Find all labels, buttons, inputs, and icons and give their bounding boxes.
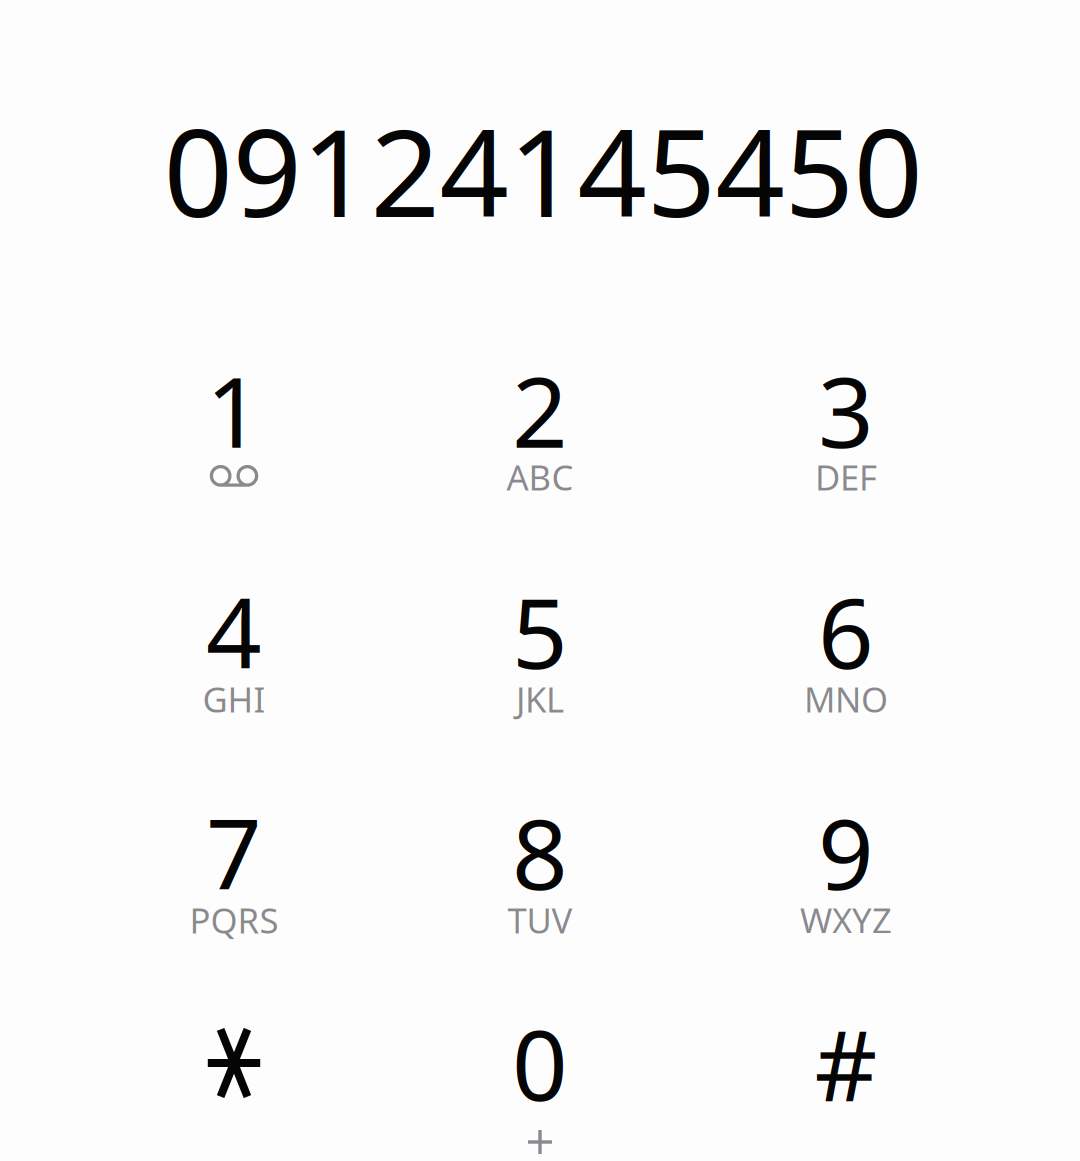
staticText: 0 (512, 998, 568, 1128)
button[interactable]: 7 PQRS (84, 791, 384, 981)
staticText: 8 (512, 787, 568, 917)
staticText: PQRS (189, 897, 278, 943)
staticText: GHI (202, 676, 265, 722)
staticText: ABC (506, 454, 573, 500)
staticText: MNO (804, 676, 888, 722)
button[interactable]: 5 JKL (390, 570, 690, 760)
staticText: WXYZ (800, 897, 892, 943)
button[interactable]: 9 WXYZ (696, 791, 996, 981)
staticText: # (814, 998, 877, 1128)
staticText: 3 (818, 345, 874, 475)
staticText: 5 (512, 566, 568, 696)
staticText: 2 (512, 345, 568, 475)
button[interactable]: star (84, 1007, 384, 1161)
staticText: 7 (206, 787, 262, 917)
staticText: JKL (516, 676, 564, 722)
staticText: TUV (507, 897, 572, 943)
staticText: 9 (818, 787, 874, 917)
staticText: 6 (818, 566, 874, 696)
button[interactable]: 3 DEF (696, 348, 996, 538)
button[interactable]: 2 ABC (390, 348, 690, 538)
button[interactable]: 0 plus (390, 1007, 690, 1161)
staticText: 09124145450 (163, 89, 922, 250)
button[interactable]: 8 TUV (390, 791, 690, 981)
button[interactable]: pound (696, 1007, 996, 1161)
staticText: DEF (815, 454, 877, 500)
button[interactable]: 6 MNO (696, 570, 996, 760)
staticText: 4 (206, 566, 262, 696)
button[interactable]: 1 voicemail (84, 348, 384, 538)
button[interactable]: 4 GHI (84, 570, 384, 760)
staticText: 1 (206, 345, 262, 475)
